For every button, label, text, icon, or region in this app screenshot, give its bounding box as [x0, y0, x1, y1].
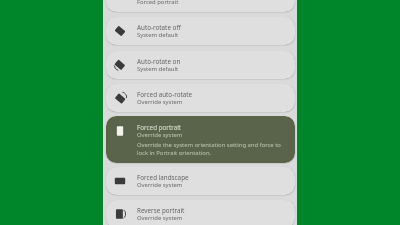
button[interactable]: Forced auto-rotate: [106, 84, 295, 112]
staticText: System default: [137, 65, 179, 73]
staticText: Override system: [137, 131, 183, 139]
button[interactable]: Forced portrait: [106, 116, 295, 163]
button[interactable]: Auto-rotate on: [106, 51, 295, 79]
staticText: Override system: [137, 181, 183, 189]
staticText: Forced portrait: [137, 123, 182, 132]
staticText: Auto-rotate on: [137, 57, 181, 66]
button[interactable]: Forced landscape: [106, 167, 295, 195]
staticText: Reverse portrait: [137, 206, 185, 215]
staticText: Forced landscape: [137, 173, 189, 182]
staticText: Override system: [137, 98, 183, 106]
button[interactable]: Reverse portrait: [106, 200, 295, 225]
button[interactable]: Current orientation: [106, 0, 295, 12]
staticText: Forced portrait: [137, 0, 179, 6]
staticText: Override system: [137, 214, 183, 222]
staticText: Forced auto-rotate: [137, 90, 193, 99]
staticText: System default: [137, 31, 179, 39]
button[interactable]: Auto-rotate off: [106, 17, 295, 45]
staticText: Auto-rotate off: [137, 23, 181, 32]
staticText: Override the system orientation setting …: [137, 141, 283, 157]
